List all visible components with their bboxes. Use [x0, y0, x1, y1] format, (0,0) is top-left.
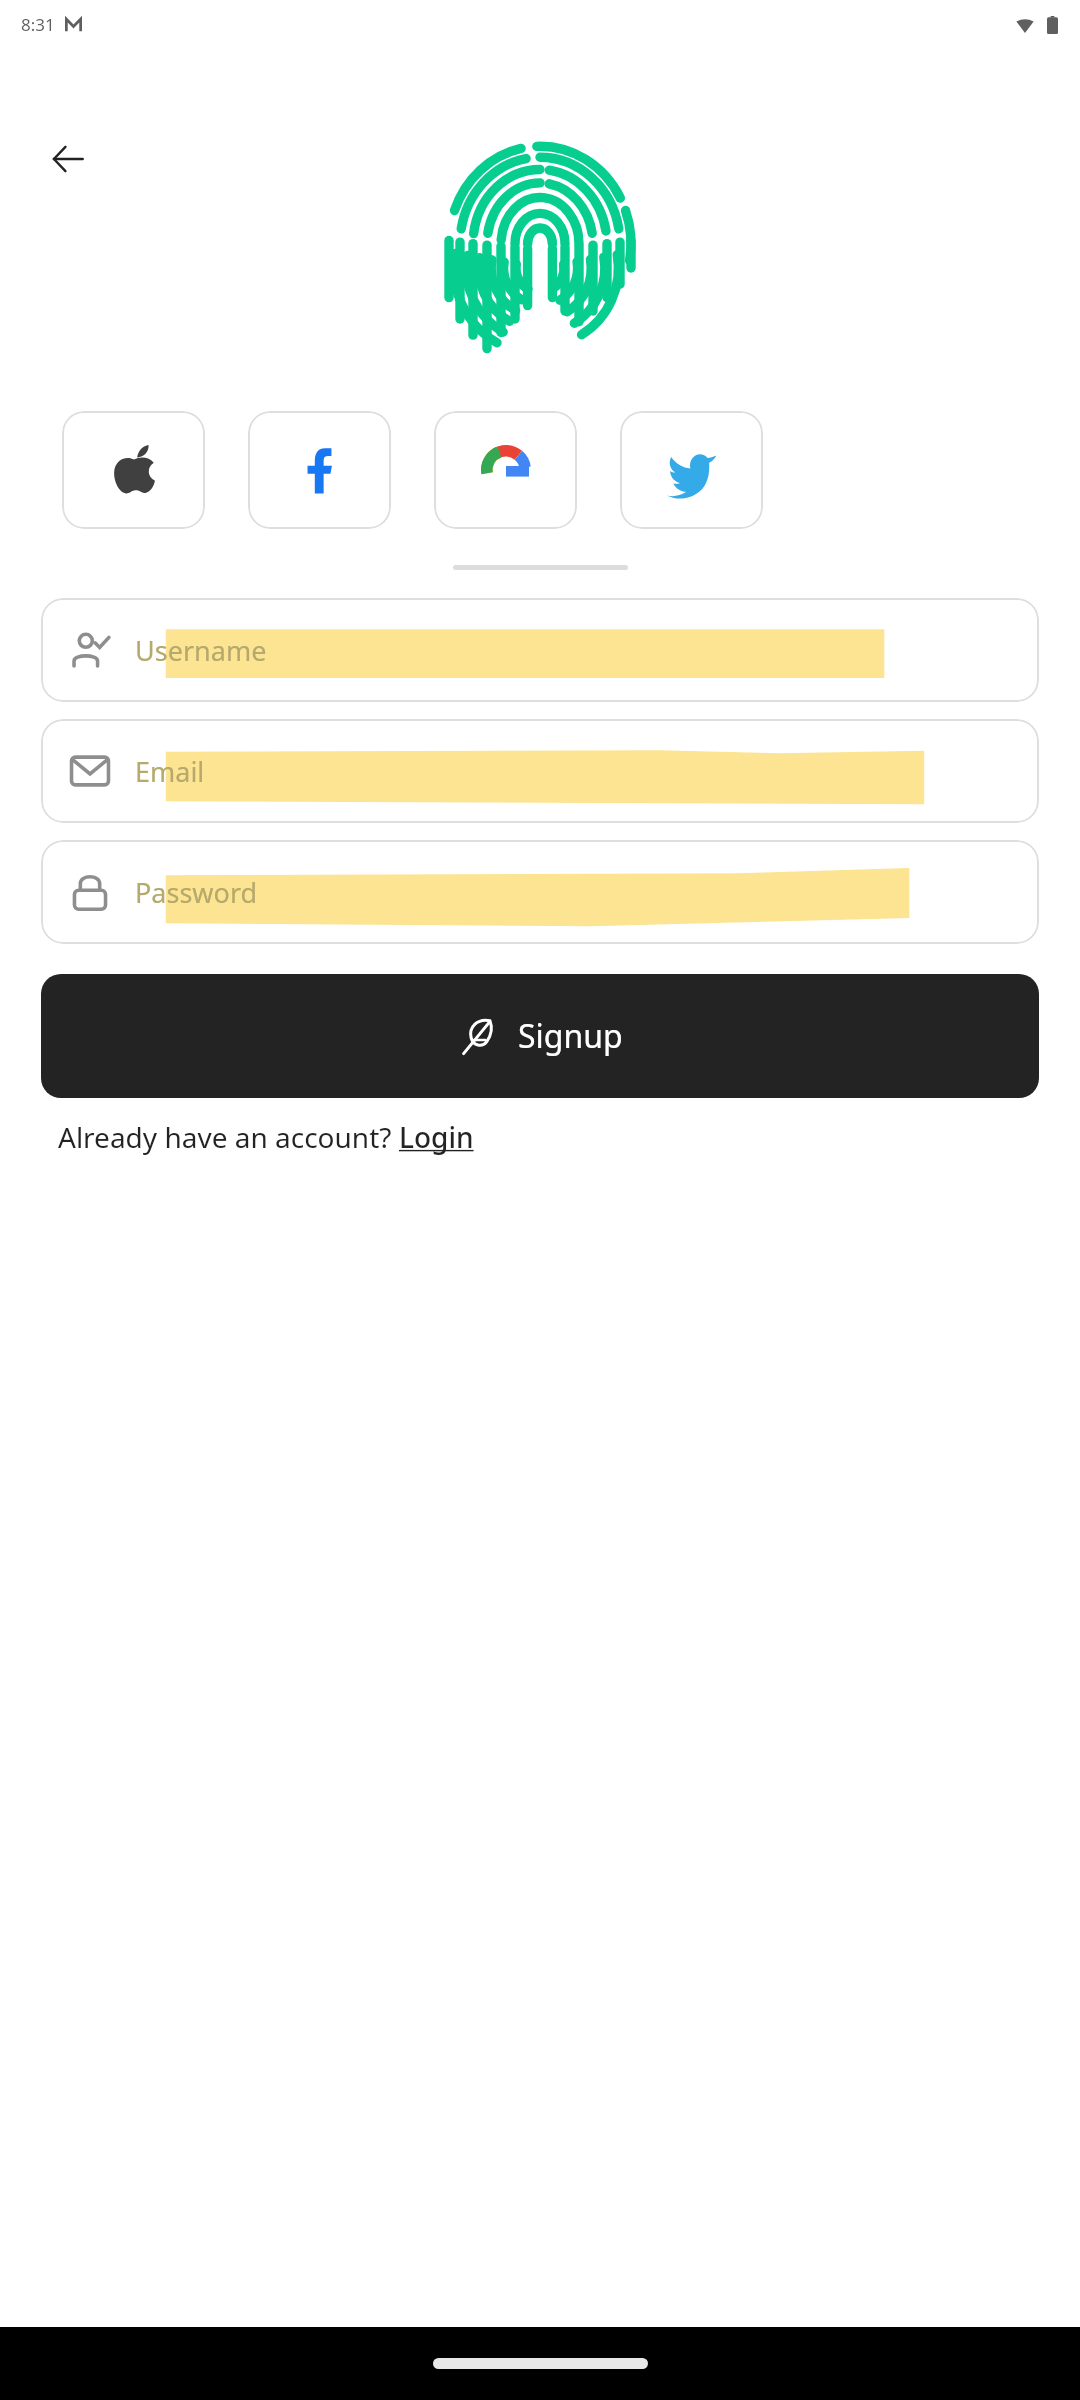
button[interactable]: Login	[399, 1118, 474, 1156]
staticText: Email	[135, 753, 205, 790]
button[interactable]: Password	[41, 840, 1039, 944]
button[interactable]: Sign in with Google	[434, 411, 577, 529]
button[interactable]: Sign in with Apple	[62, 411, 205, 529]
staticText: Username	[135, 632, 267, 669]
staticText: 8:31	[21, 13, 55, 36]
staticText: Signup	[518, 1014, 623, 1058]
button[interactable]: Email	[41, 719, 1039, 823]
staticText: Login	[399, 1118, 474, 1156]
button[interactable]: Sign in with Facebook	[248, 411, 391, 529]
staticText: Already have an account?	[58, 1118, 399, 1156]
button[interactable]: Username	[41, 598, 1039, 702]
button[interactable]: Signup	[41, 974, 1039, 1098]
button[interactable]: Back	[42, 133, 94, 185]
button[interactable]: Sign in with Twitter	[620, 411, 763, 529]
staticText: Password	[135, 874, 258, 911]
